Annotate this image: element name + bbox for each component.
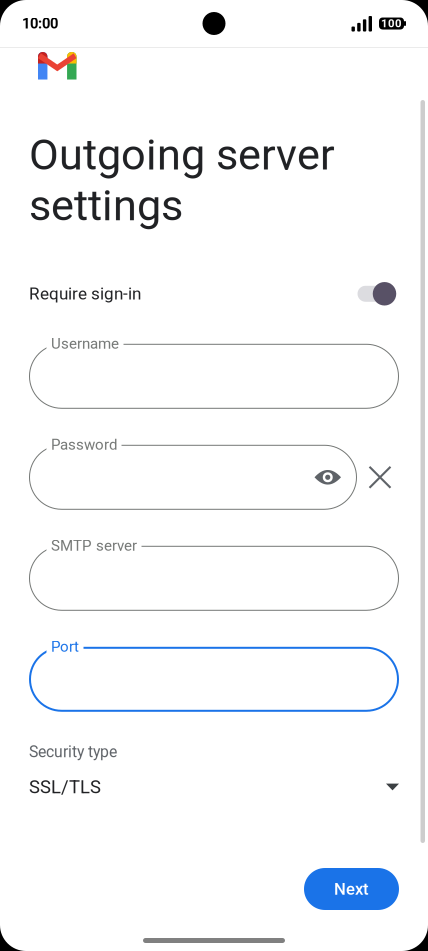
staticText: SMTP server (51, 537, 137, 554)
button[interactable]: Next (304, 868, 399, 910)
staticText: Next (334, 879, 369, 899)
staticText: Security type (29, 743, 117, 761)
staticText: 10:00 (22, 15, 58, 32)
button[interactable]: Security type (0, 743, 428, 798)
staticText: SSL/TLS (29, 776, 101, 798)
button[interactable]: Require sign-in (0, 277, 428, 311)
staticText: 100 (381, 17, 402, 30)
staticText: Username (51, 335, 119, 352)
staticText: Require sign-in (29, 284, 141, 304)
staticText: Port (51, 638, 79, 655)
button[interactable]: Clear password (361, 458, 399, 496)
staticText: Password (51, 436, 117, 453)
staticText: Outgoing server settings (29, 129, 335, 231)
